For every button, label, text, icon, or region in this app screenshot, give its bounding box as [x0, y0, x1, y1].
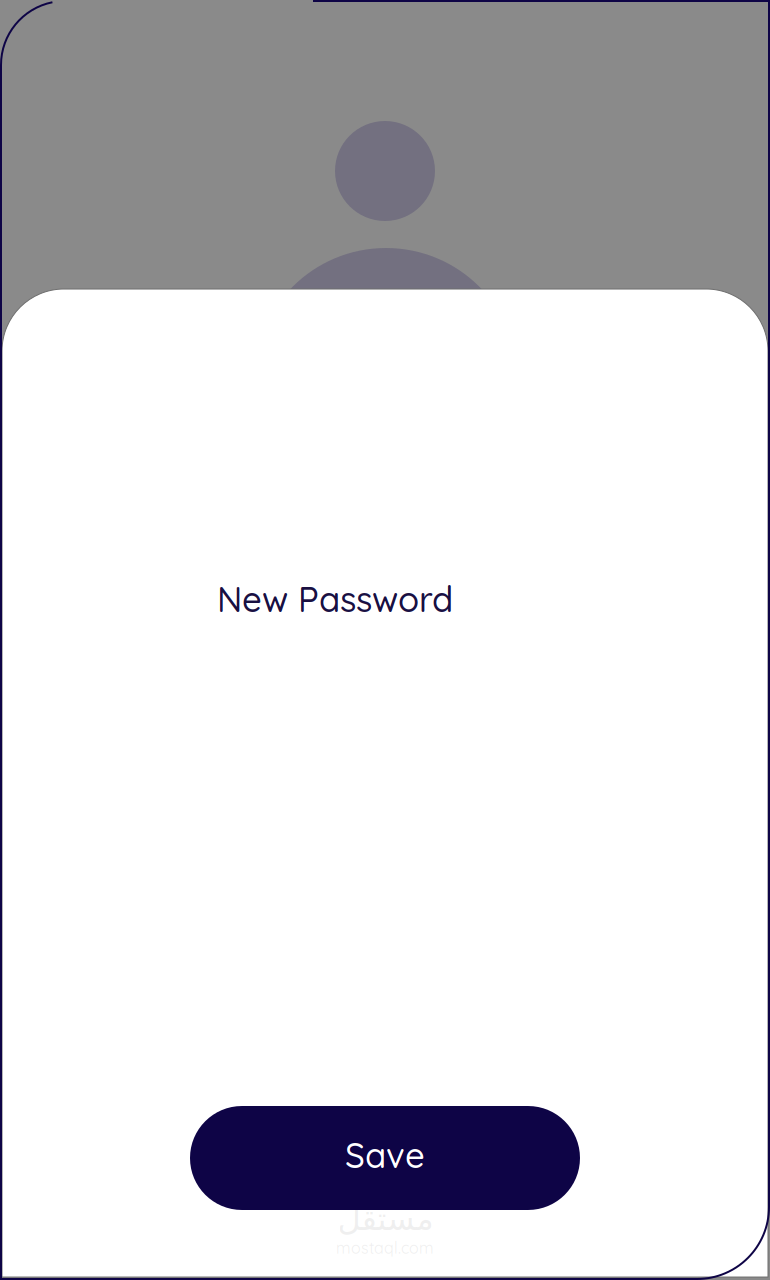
staticText: New Password [217, 577, 453, 621]
button[interactable]: Save [190, 1106, 580, 1210]
staticText: Save [345, 1133, 425, 1177]
staticText: mostaql.com [336, 1238, 434, 1258]
button[interactable]: New Password [0, 0, 770, 1280]
staticText: مستقل [337, 1200, 433, 1238]
